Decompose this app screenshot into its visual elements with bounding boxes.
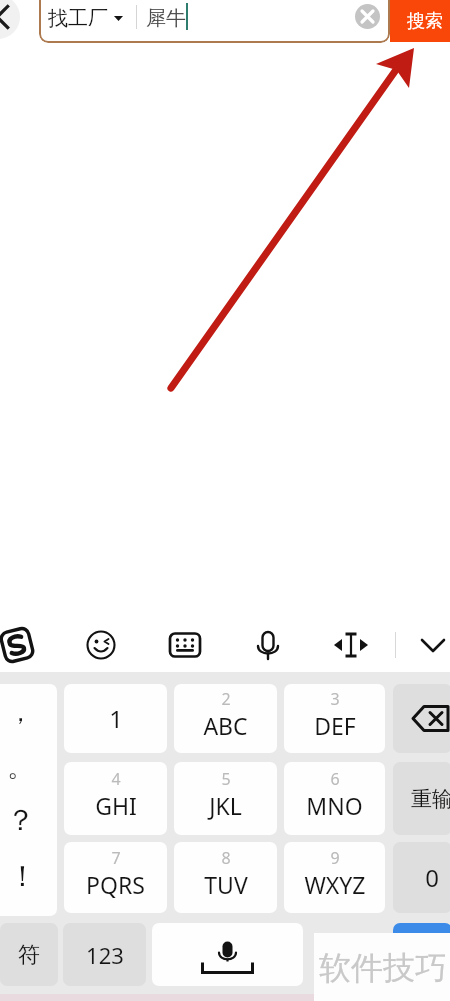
- button[interactable]: Key 6: [284, 762, 385, 835]
- button[interactable]: Sogou input: [0, 623, 39, 667]
- staticText: 5: [221, 768, 231, 790]
- staticText: 123: [86, 940, 124, 970]
- button[interactable]: Voice input: [246, 623, 290, 667]
- button[interactable]: Key 8: [174, 842, 277, 913]
- button[interactable]: Numbers 123: [63, 923, 146, 986]
- staticText: 4: [111, 768, 121, 790]
- button[interactable]: Key 5: [174, 762, 277, 835]
- button[interactable]: Backspace: [393, 684, 450, 753]
- button[interactable]: Key 4: [64, 762, 167, 835]
- staticText: ！: [8, 858, 37, 895]
- button[interactable]: Emoji: [79, 623, 123, 667]
- staticText: 8: [221, 847, 231, 869]
- button[interactable]: Enter: [393, 923, 450, 986]
- staticText: 软件技巧: [319, 948, 447, 988]
- staticText: 7: [111, 847, 121, 869]
- button[interactable]: Back: [0, 0, 20, 39]
- staticText: 9: [330, 847, 340, 869]
- button[interactable]: Key 1: [64, 684, 167, 753]
- staticText: 3: [330, 688, 340, 710]
- button[interactable]: Key 3: [284, 684, 385, 753]
- staticText: WXYZ: [304, 869, 366, 900]
- button[interactable]: Key 7: [64, 842, 167, 913]
- staticText: 0: [425, 861, 439, 894]
- button[interactable]: Clear text: [355, 4, 380, 29]
- staticText: 搜索: [407, 10, 443, 33]
- button[interactable]: Voice input: [152, 923, 303, 986]
- staticText: 找工厂: [48, 6, 108, 30]
- button[interactable]: Key 2: [174, 684, 277, 753]
- staticText: 符: [18, 941, 40, 969]
- button[interactable]: Re-enter: [393, 762, 450, 835]
- button[interactable]: Key 0: [393, 842, 450, 913]
- staticText: 。: [7, 750, 34, 784]
- button[interactable]: Keyboard layout: [163, 623, 207, 667]
- staticText: MNO: [306, 790, 363, 821]
- staticText: ？: [6, 802, 35, 839]
- staticText: 1: [109, 702, 123, 735]
- staticText: 重输入: [411, 786, 450, 812]
- staticText: PQRS: [86, 869, 145, 900]
- staticText: DEF: [314, 710, 356, 741]
- button[interactable]: Symbols: [0, 923, 58, 986]
- staticText: JKL: [209, 790, 242, 821]
- staticText: 2: [221, 688, 231, 710]
- staticText: TUV: [204, 869, 248, 900]
- button[interactable]: Key 9: [284, 842, 385, 913]
- staticText: GHI: [95, 790, 137, 821]
- staticText: 6: [330, 768, 340, 790]
- button[interactable]: 搜索: [390, 0, 450, 42]
- button[interactable]: Punctuation: [0, 684, 57, 916]
- button[interactable]: Hide keyboard: [411, 623, 450, 667]
- staticText: ，: [8, 697, 33, 728]
- staticText: 犀牛: [146, 6, 186, 31]
- staticText: ABC: [203, 710, 248, 741]
- button[interactable]: Move cursor: [329, 623, 373, 667]
- button[interactable]: [39, 0, 390, 43]
- button[interactable]: 找工厂: [48, 6, 123, 30]
